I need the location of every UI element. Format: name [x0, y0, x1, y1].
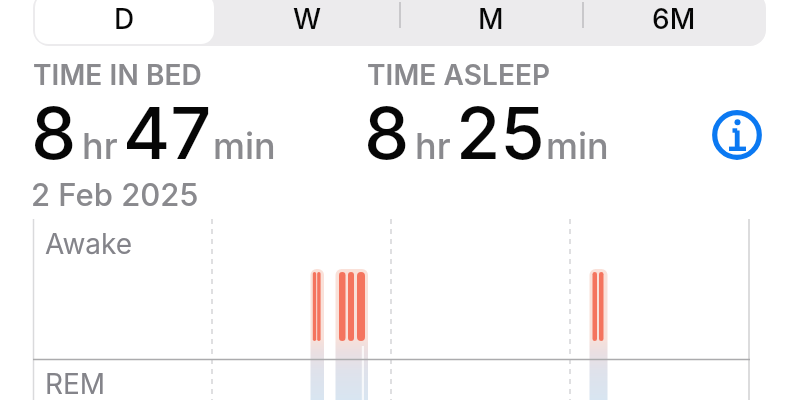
button[interactable]	[711, 109, 763, 161]
staticText: TIME IN BED	[33, 58, 202, 92]
staticText: 8	[364, 89, 410, 176]
staticText: W	[293, 2, 322, 36]
button[interactable]: D	[33, 0, 216, 46]
staticText: min	[213, 124, 276, 168]
staticText: 2 Feb 2025	[31, 176, 199, 214]
staticText: hr	[415, 124, 451, 168]
button[interactable]: W	[216, 0, 399, 46]
staticText: 25	[456, 89, 545, 176]
button[interactable]: M	[399, 0, 582, 46]
staticText: 47	[123, 89, 212, 176]
staticText: M	[478, 2, 504, 36]
staticText: Awake	[45, 227, 133, 261]
staticText: min	[546, 124, 609, 168]
staticText: D	[114, 2, 135, 36]
staticText: 8	[31, 89, 77, 176]
button[interactable]: 6M	[582, 0, 765, 46]
staticText: hr	[82, 124, 118, 168]
staticText: 6M	[652, 2, 696, 36]
staticText: REM	[45, 367, 106, 400]
staticText: TIME ASLEEP	[367, 58, 551, 92]
